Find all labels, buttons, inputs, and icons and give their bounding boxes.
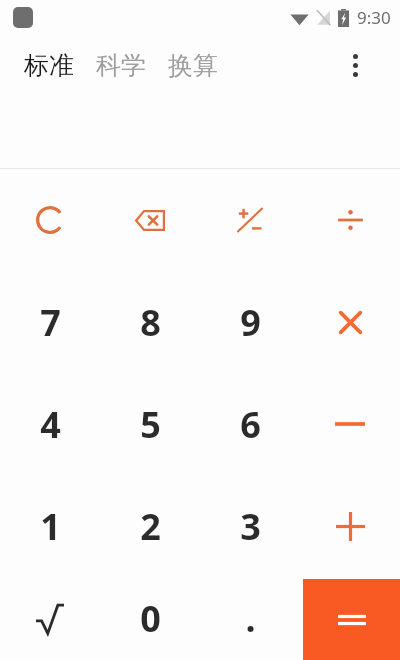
button[interactable]: 7	[0, 271, 100, 373]
button[interactable]: Equals	[303, 579, 400, 660]
staticText: .	[245, 594, 256, 643]
staticText: 4	[40, 400, 61, 449]
button[interactable]: 标准	[20, 44, 78, 87]
staticText: 9:30	[357, 6, 391, 29]
button[interactable]: Plus	[300, 475, 400, 577]
staticText: 5	[140, 400, 161, 449]
button[interactable]: 4	[0, 373, 100, 475]
button[interactable]: 5	[100, 373, 200, 475]
staticText: 6	[240, 400, 261, 449]
button[interactable]: Square root	[0, 577, 100, 660]
button[interactable]: Multiply	[300, 271, 400, 373]
button[interactable]: 8	[100, 271, 200, 373]
staticText: 0	[140, 594, 161, 643]
staticText: 换算	[168, 50, 218, 81]
staticText: 8	[140, 298, 161, 347]
staticText: 科学	[96, 50, 146, 81]
staticText: 3	[240, 502, 261, 551]
button[interactable]: .	[200, 577, 300, 660]
staticText: 标准	[24, 50, 74, 81]
button[interactable]: 9	[200, 271, 300, 373]
button[interactable]: More options	[338, 48, 372, 82]
button[interactable]: 科学	[92, 44, 150, 87]
staticText: 9	[240, 298, 261, 347]
button[interactable]: 2	[100, 475, 200, 577]
staticText: 2	[140, 502, 161, 551]
button[interactable]: Plus minus	[200, 169, 300, 271]
staticText: 1	[40, 502, 61, 551]
button[interactable]: Minus	[300, 373, 400, 475]
button[interactable]: Divide	[300, 169, 400, 271]
button[interactable]: 3	[200, 475, 300, 577]
button[interactable]: 换算	[164, 44, 222, 87]
button[interactable]: 0	[100, 577, 200, 660]
button[interactable]: Clear	[0, 169, 100, 271]
button[interactable]: 1	[0, 475, 100, 577]
button[interactable]: Backspace	[100, 169, 200, 271]
button[interactable]: 6	[200, 373, 300, 475]
staticText: 7	[40, 298, 61, 347]
